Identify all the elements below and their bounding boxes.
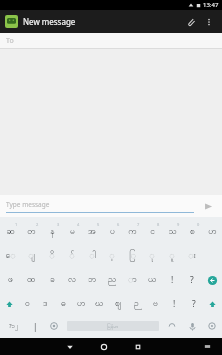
button[interactable]: ယ (142, 268, 162, 292)
staticText: | (33, 321, 38, 332)
button[interactable]: ု (142, 244, 162, 268)
button[interactable]: ခ (42, 268, 62, 292)
staticText: ာ (128, 274, 137, 287)
button[interactable]: ဟ (202, 220, 222, 244)
button[interactable]: Recent apps (121, 338, 155, 355)
button[interactable]: သ (162, 220, 182, 244)
button[interactable]: ိ (42, 244, 62, 268)
button[interactable]: Home (87, 338, 121, 355)
button[interactable]: ! (162, 268, 182, 292)
staticText: 8 (157, 222, 160, 227)
button[interactable]: လ (62, 268, 82, 292)
staticText: 7 (137, 222, 140, 227)
button[interactable]: Shift (0, 292, 18, 316)
staticText: ဉ (134, 298, 139, 311)
staticText: 3 (57, 222, 60, 227)
button[interactable]: ဒ (36, 292, 54, 316)
button[interactable]: ! (165, 292, 184, 316)
button[interactable]: Backspace (202, 268, 222, 292)
button[interactable]: ည (102, 268, 122, 292)
staticText: ဘ (88, 274, 97, 287)
staticText: ? (192, 298, 196, 310)
staticText: ဗ (153, 298, 158, 311)
staticText: ဓ (61, 298, 66, 311)
staticText: ေ (5, 250, 16, 263)
button[interactable]: ပ (102, 220, 122, 244)
staticText: ဈ (115, 298, 121, 311)
staticText: To (6, 36, 14, 46)
staticText: သ (168, 226, 177, 239)
button[interactable]: ါ (82, 244, 102, 268)
staticText: ! (173, 298, 176, 310)
staticText: 6 (117, 222, 120, 227)
staticText: ဖ (8, 274, 13, 287)
button[interactable]: ဃ (90, 292, 108, 316)
button[interactable]: ဆ (0, 220, 21, 244)
button[interactable]: ဟ (72, 292, 90, 316)
button[interactable]: မ (62, 220, 82, 244)
button[interactable]: ေ (0, 244, 21, 268)
button[interactable]: ထ (21, 268, 42, 292)
staticText: ျ (28, 250, 35, 263)
staticText: ဟ (77, 298, 86, 311)
button[interactable]: ဈ (108, 292, 127, 316)
button[interactable]: ့ (102, 244, 122, 268)
button[interactable]: န (42, 220, 62, 244)
button[interactable]: င (142, 220, 162, 244)
button[interactable]: Language (44, 316, 64, 336)
staticText: မြန်မာ (107, 323, 119, 330)
button[interactable]: ဝ (18, 292, 36, 316)
staticText: 5 (97, 222, 100, 227)
button[interactable]: Type message (6, 200, 194, 213)
staticText: ဃ (95, 298, 104, 311)
staticText: ခ (50, 274, 55, 287)
button[interactable]: ဖ (0, 268, 21, 292)
button[interactable]: Messaging app icon (5, 15, 18, 28)
button[interactable]: ဘ (82, 268, 102, 292)
staticText: ် (69, 250, 75, 263)
button[interactable]: Space (67, 321, 159, 331)
button[interactable]: Voice input (182, 316, 202, 336)
button[interactable]: Back (53, 338, 87, 355)
staticText: 0 (197, 222, 200, 227)
button[interactable]: စ (182, 220, 202, 244)
button[interactable]: ဓ (54, 292, 72, 316)
button[interactable]: ? (182, 268, 202, 292)
button[interactable]: ျ (21, 244, 42, 268)
button[interactable]: ? (184, 292, 203, 316)
button[interactable]: Send (200, 198, 216, 214)
staticText: ဒ (43, 298, 48, 311)
button[interactable]: ာ (122, 268, 142, 292)
staticText: New message (23, 16, 76, 27)
staticText: 2 (36, 222, 39, 227)
staticText: ?၁၂ (9, 322, 18, 331)
staticText: 4 (77, 222, 80, 227)
button[interactable]: ူ (162, 244, 182, 268)
button[interactable]: Shift (203, 292, 222, 316)
staticText: န (50, 226, 55, 239)
staticText: 9 (177, 222, 180, 227)
staticText: ူ (169, 250, 175, 263)
button[interactable]: Keyboard indicator (192, 338, 222, 355)
button[interactable]: ဉ (127, 292, 146, 316)
button[interactable]: Attach (181, 12, 201, 32)
button[interactable]: ြ (122, 244, 142, 268)
button[interactable]: ?၁၂ (0, 316, 26, 336)
button[interactable]: Settings (202, 316, 222, 336)
staticText: ည (108, 274, 117, 287)
button[interactable]: ် (62, 244, 82, 268)
button[interactable]: း (182, 244, 202, 268)
button[interactable]: က (122, 220, 142, 244)
staticText: ယ (148, 274, 157, 287)
button[interactable]: | (26, 316, 44, 336)
staticText: ိ (49, 250, 55, 263)
button[interactable]: Emoji (162, 316, 182, 336)
button[interactable]: ဗ (146, 292, 165, 316)
staticText: က (128, 226, 137, 239)
button[interactable]: More options (201, 14, 217, 30)
staticText: ု (149, 250, 155, 263)
button[interactable]: အ (82, 220, 102, 244)
button[interactable]: တ (21, 220, 42, 244)
